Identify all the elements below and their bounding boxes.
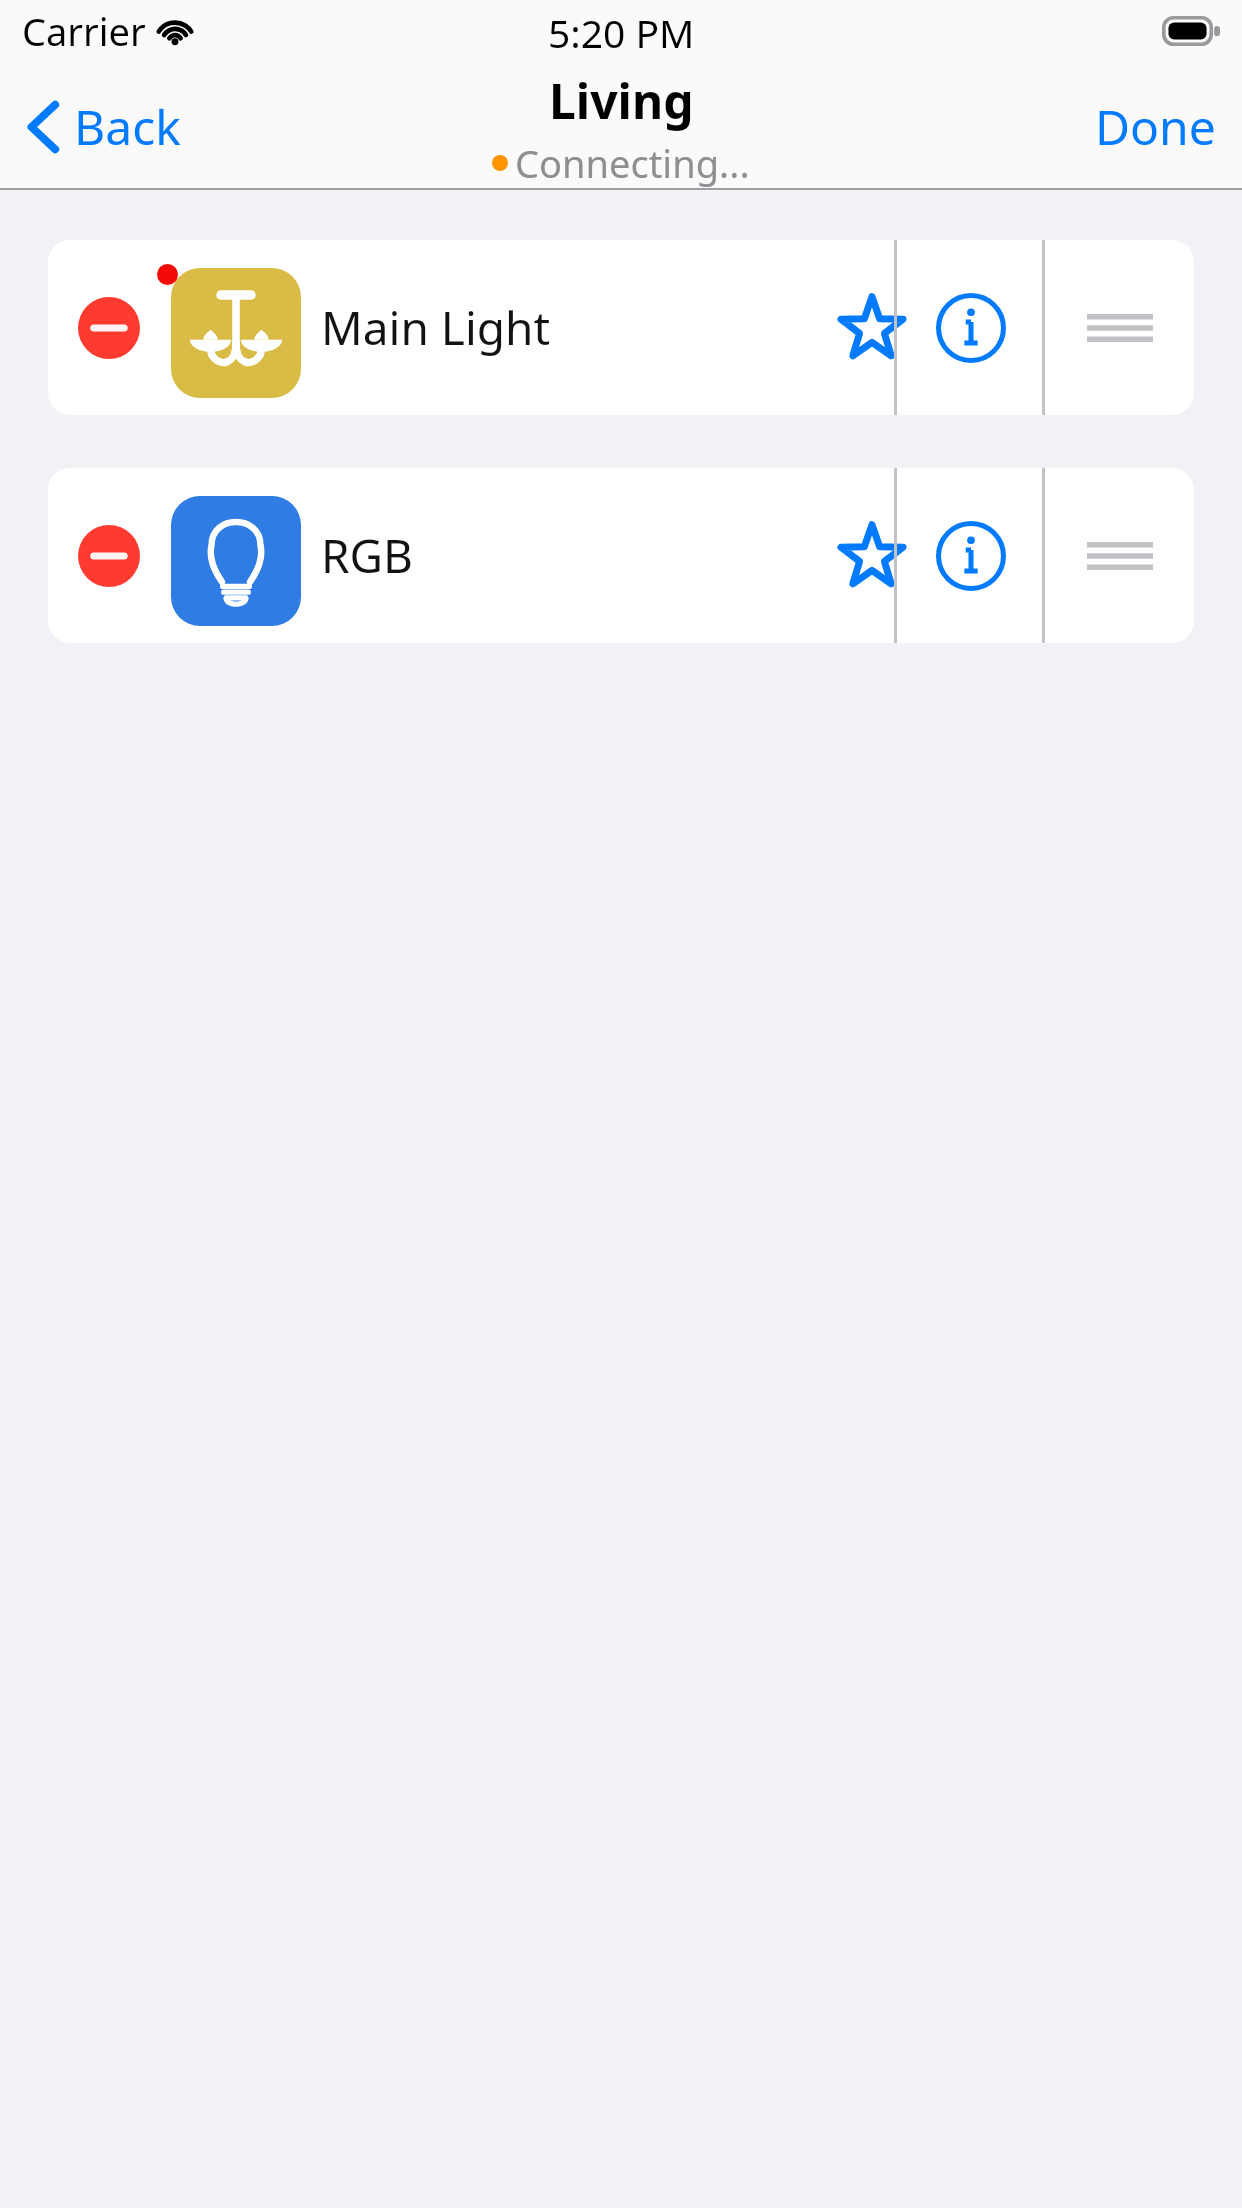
staticText: Done [1095,94,1216,159]
staticText: Main Light [321,296,551,359]
button[interactable]: Reorder [1045,240,1194,415]
button[interactable]: Remove RGB [48,468,895,643]
button[interactable]: Back [0,88,201,165]
button[interactable]: Remove Main Light [48,240,895,415]
button[interactable]: Reorder [1045,468,1194,643]
button[interactable]: Done [1069,88,1242,165]
staticText: Back [74,94,181,159]
button[interactable]: Remove RGB [77,524,141,588]
button[interactable]: Remove Main Light [77,296,141,360]
staticText: 5:20 PM [548,6,695,59]
staticText: Connecting... [515,137,750,189]
button[interactable]: Favorite [800,240,943,415]
staticText: Living [549,68,694,133]
button[interactable]: Favorite [800,468,943,643]
staticText: Carrier [22,5,146,57]
button[interactable]: Info [897,240,1045,415]
button[interactable]: Info [897,468,1045,643]
staticText: RGB [321,524,414,587]
